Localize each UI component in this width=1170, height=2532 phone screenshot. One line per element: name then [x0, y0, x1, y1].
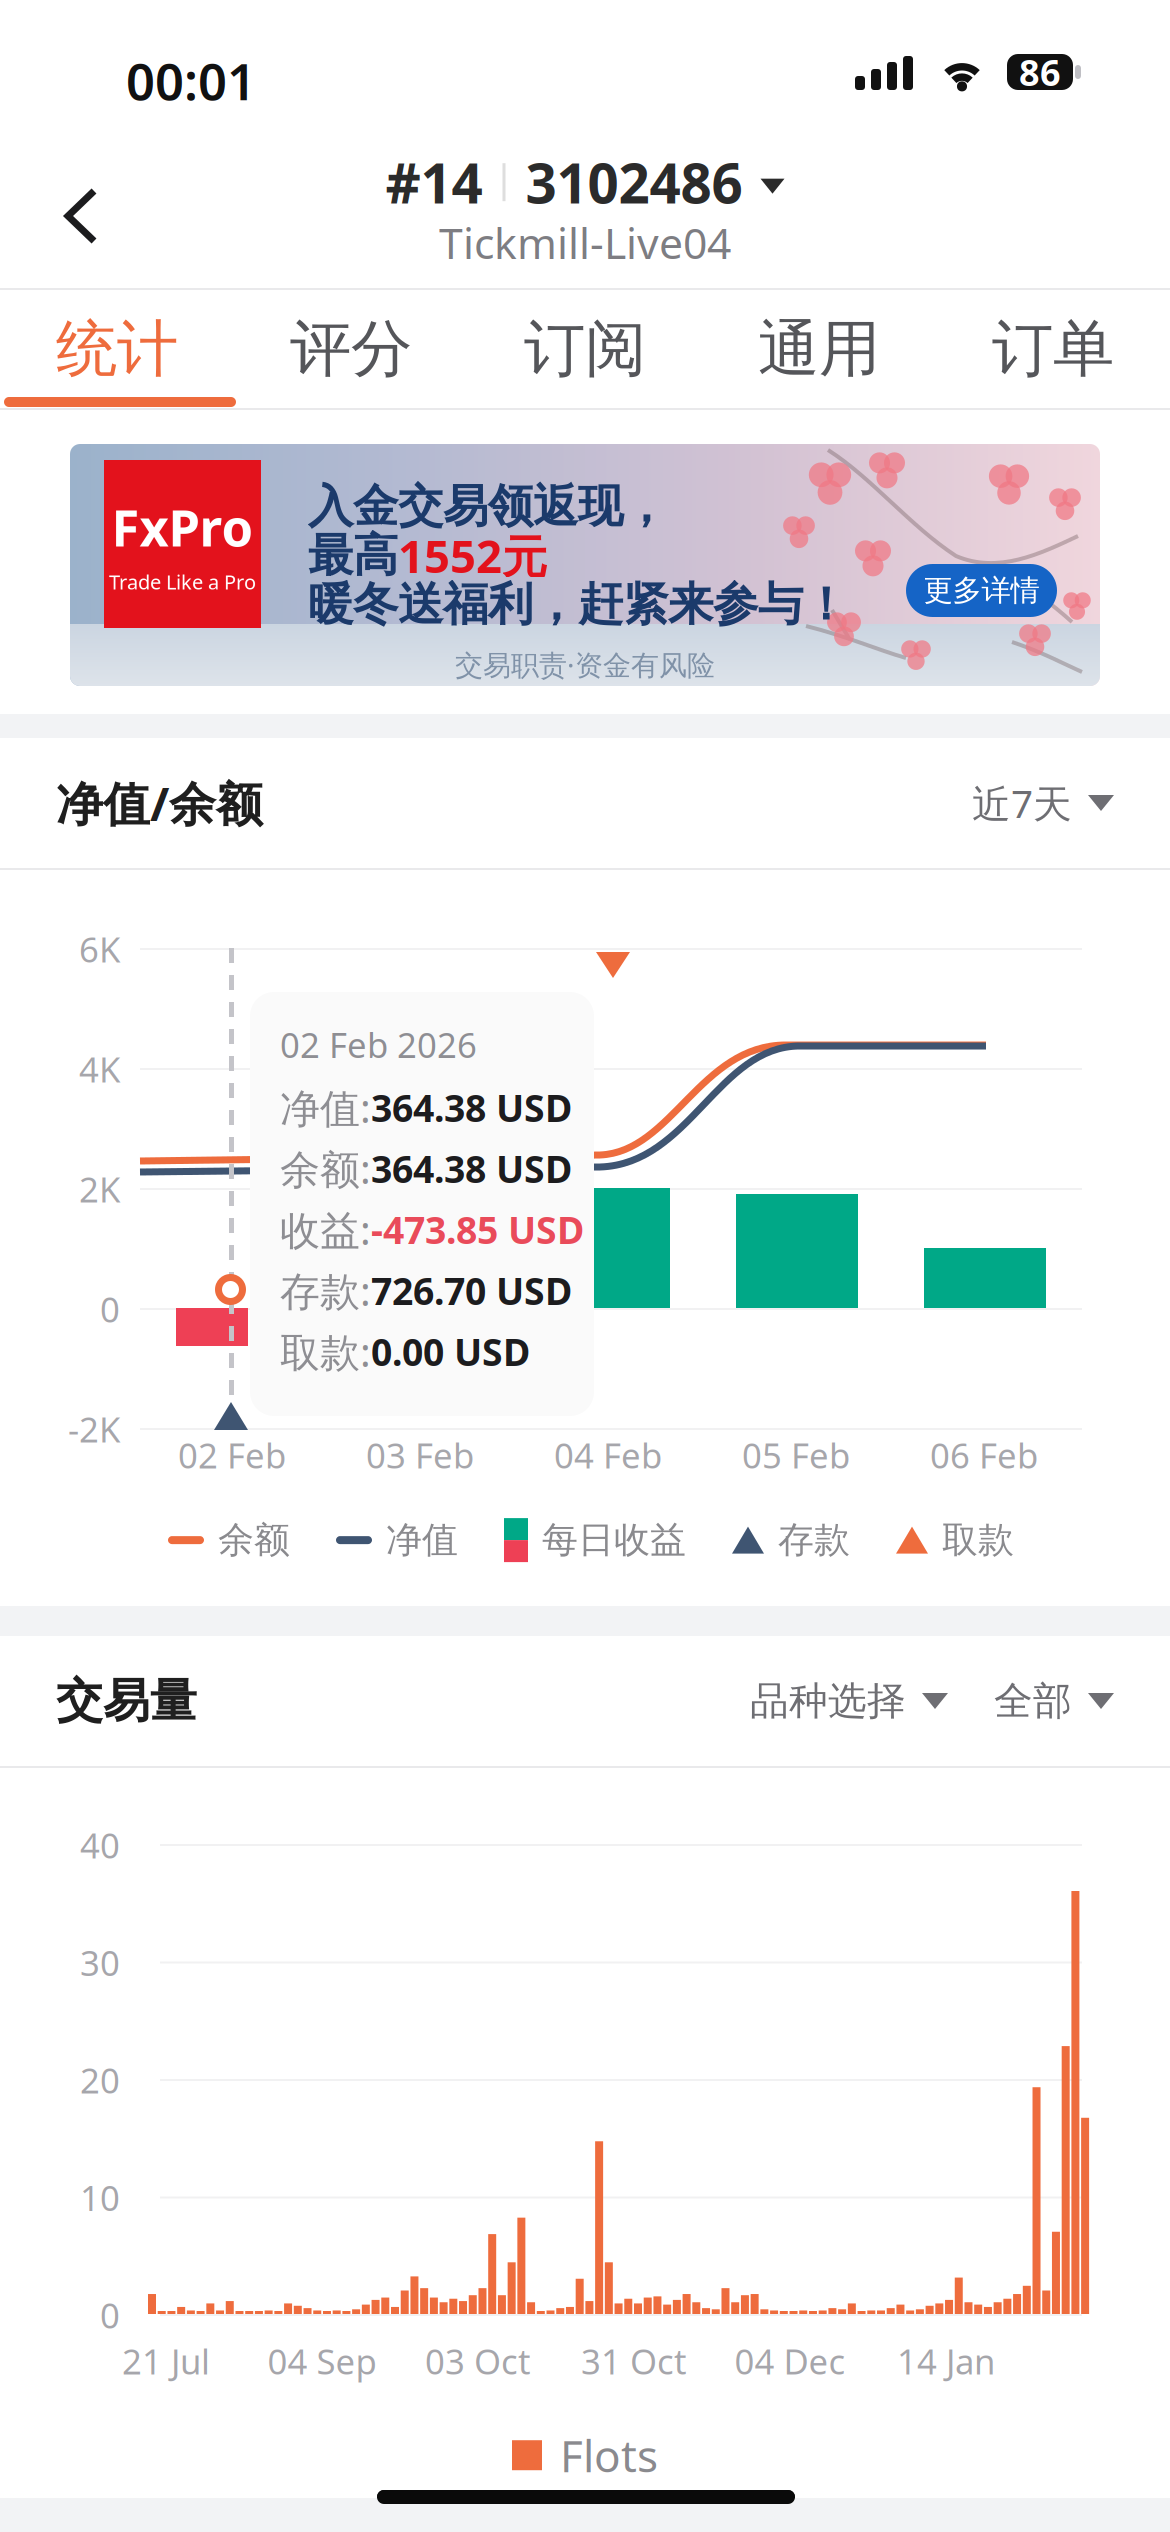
staticText: 0: [100, 1286, 120, 1332]
staticText: 最高: [308, 528, 398, 583]
staticText: 6K: [79, 926, 120, 972]
staticText: 余额:: [280, 1142, 371, 1195]
staticText: 更多详情: [923, 572, 1039, 608]
staticText: 21 Jul: [122, 2338, 210, 2384]
staticText: 0.00 USD: [371, 1327, 530, 1376]
staticText: 通用: [758, 311, 880, 387]
staticText: 30: [80, 1939, 120, 1985]
staticText: 近7天: [972, 777, 1072, 829]
staticText: #14: [385, 146, 482, 218]
button[interactable]: 近7天: [926, 738, 1114, 868]
staticText: 取款:: [280, 1325, 371, 1378]
staticText: 入金交易领返现，: [308, 479, 668, 534]
button[interactable]: 统计: [0, 290, 234, 408]
button[interactable]: 评分: [234, 290, 468, 408]
staticText: 统计: [56, 311, 178, 387]
staticText: 收益:: [280, 1203, 371, 1256]
staticText: 14 Jan: [897, 2338, 995, 2384]
staticText: -2K: [68, 1406, 120, 1452]
staticText: 364.38 USD: [371, 1083, 572, 1132]
staticText: 40: [80, 1822, 120, 1868]
button[interactable]: Back: [22, 157, 140, 275]
staticText: Tickmill-Live04: [439, 214, 731, 271]
staticText: 订阅: [524, 311, 646, 387]
button[interactable]: 订单: [936, 290, 1170, 408]
staticText: 02 Feb: [178, 1432, 286, 1478]
staticText: 4K: [79, 1046, 120, 1092]
button[interactable]: 订阅: [468, 290, 702, 408]
staticText: 726.70 USD: [371, 1266, 572, 1315]
button[interactable]: #14: [385, 152, 784, 212]
staticText: 取款: [942, 1518, 1014, 1562]
staticText: 05 Feb: [742, 1432, 850, 1478]
button[interactable]: 通用: [702, 290, 936, 408]
staticText: 存款: [778, 1518, 850, 1562]
staticText: 净值:: [280, 1081, 371, 1134]
staticText: 存款:: [280, 1264, 371, 1317]
staticText: 余额: [218, 1518, 290, 1562]
button[interactable]: 品种选择: [704, 1636, 948, 1766]
staticText: 1552元: [398, 525, 547, 586]
staticText: 全部: [994, 1677, 1072, 1725]
staticText: 00:01: [126, 47, 256, 114]
staticText: 交易职责·资金有风险: [455, 646, 715, 683]
staticText: 86: [1019, 48, 1061, 96]
staticText: 评分: [290, 311, 412, 387]
staticText: 06 Feb: [930, 1432, 1038, 1478]
staticText: 364.38 USD: [371, 1144, 572, 1193]
staticText: 0: [100, 2292, 120, 2338]
button[interactable]: 全部: [948, 1636, 1114, 1766]
staticText: FxPro: [111, 493, 253, 560]
staticText: 订单: [992, 311, 1114, 387]
staticText: 3102486: [525, 146, 742, 218]
staticText: 品种选择: [750, 1677, 906, 1725]
staticText: 04 Sep: [267, 2338, 376, 2384]
staticText: 暖冬送福利，赶紧来参与！: [308, 577, 848, 632]
staticText: 02 Feb 2026: [280, 1021, 477, 1067]
staticText: 04 Dec: [734, 2338, 845, 2384]
staticText: 每日收益: [542, 1518, 686, 1562]
staticText: 10: [80, 2174, 120, 2220]
staticText: 2K: [79, 1166, 120, 1212]
staticText: 31 Oct: [581, 2338, 687, 2384]
staticText: 净值/余额: [56, 772, 263, 834]
staticText: 交易量: [56, 1672, 197, 1730]
staticText: 04 Feb: [554, 1432, 662, 1478]
staticText: 净值: [386, 1518, 458, 1562]
staticText: Flots: [560, 2426, 658, 2484]
button[interactable]: FxPro: [70, 444, 1100, 686]
staticText: -473.85 USD: [371, 1205, 584, 1254]
staticText: 03 Feb: [366, 1432, 474, 1478]
staticText: 20: [80, 2057, 120, 2103]
staticText: Trade Like a Pro: [109, 568, 256, 595]
staticText: 03 Oct: [425, 2338, 531, 2384]
